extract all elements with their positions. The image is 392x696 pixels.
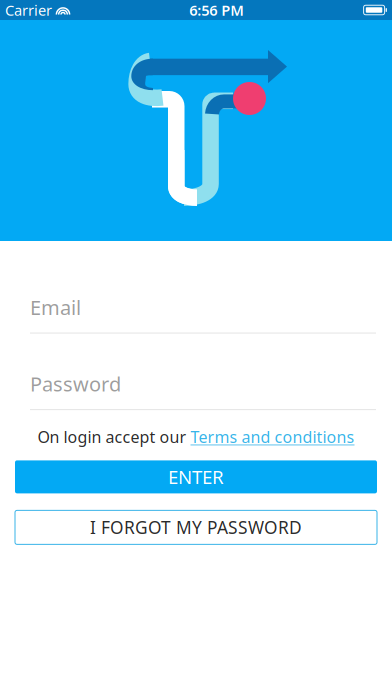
staticText: I FORGOT MY PASSWORD [90,516,302,539]
staticText: On login accept our [37,426,186,447]
staticText: Terms and conditions [190,426,354,447]
button[interactable]: Terms and conditions [190,426,354,447]
staticText: 6:56 PM [189,0,244,20]
button[interactable]: ENTER [15,460,377,493]
staticText: ENTER [168,464,224,489]
staticText: Password [30,371,121,397]
button[interactable]: I FORGOT MY PASSWORD [15,510,377,544]
staticText: Carrier [5,0,52,20]
staticText: Email [30,294,81,321]
